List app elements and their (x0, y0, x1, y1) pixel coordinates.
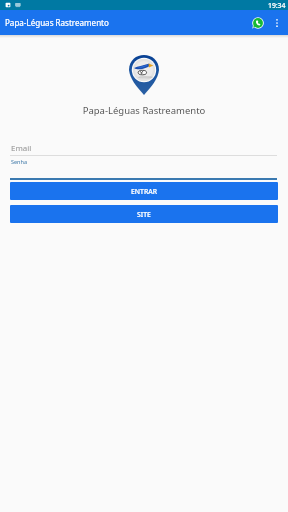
button[interactable]: Senha (10, 158, 277, 180)
staticText: Senha (11, 158, 28, 165)
staticText: Papa-Léguas Rastreamento (0, 104, 288, 117)
button[interactable]: WhatsApp (248, 13, 268, 33)
staticText: 19:34 (268, 1, 286, 10)
button[interactable]: Email (10, 140, 277, 156)
staticText: Email (11, 143, 32, 154)
staticText: SITE (137, 210, 151, 219)
button[interactable]: More options (268, 14, 286, 32)
button[interactable]: SITE (10, 205, 278, 223)
button[interactable]: ENTRAR (10, 182, 278, 200)
staticText: Papa-Léguas Rastreamento (5, 17, 248, 28)
staticText: ENTRAR (131, 187, 157, 196)
